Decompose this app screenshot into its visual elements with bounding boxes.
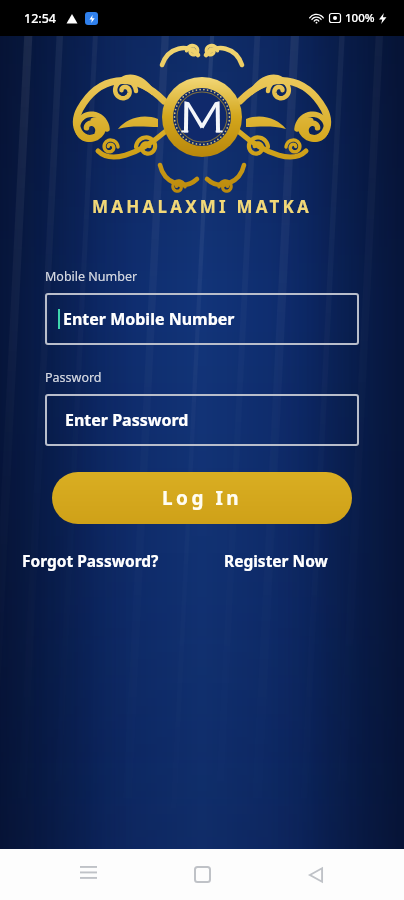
staticText: MAHALAXMI MATKA xyxy=(92,195,312,218)
button[interactable]: Enter Mobile Number xyxy=(45,293,359,345)
staticText: Enter Password xyxy=(65,409,189,431)
staticText: Register Now xyxy=(224,550,328,571)
staticText: 12:54 xyxy=(24,10,57,27)
button[interactable]: Back xyxy=(290,849,342,900)
button[interactable]: Recent apps xyxy=(62,849,114,900)
button[interactable]: Forgot Password? xyxy=(18,546,163,575)
button[interactable]: Log In xyxy=(52,472,352,524)
staticText: Log In xyxy=(162,485,243,511)
staticText: Forgot Password? xyxy=(22,550,159,571)
button[interactable]: Enter Password xyxy=(45,394,359,446)
staticText: Mobile Number xyxy=(45,268,138,285)
button[interactable]: Register Now xyxy=(220,546,332,575)
staticText: 100% xyxy=(345,10,375,26)
button[interactable]: Home xyxy=(176,849,228,900)
staticText: Enter Mobile Number xyxy=(63,308,235,330)
staticText: Password xyxy=(45,369,102,386)
